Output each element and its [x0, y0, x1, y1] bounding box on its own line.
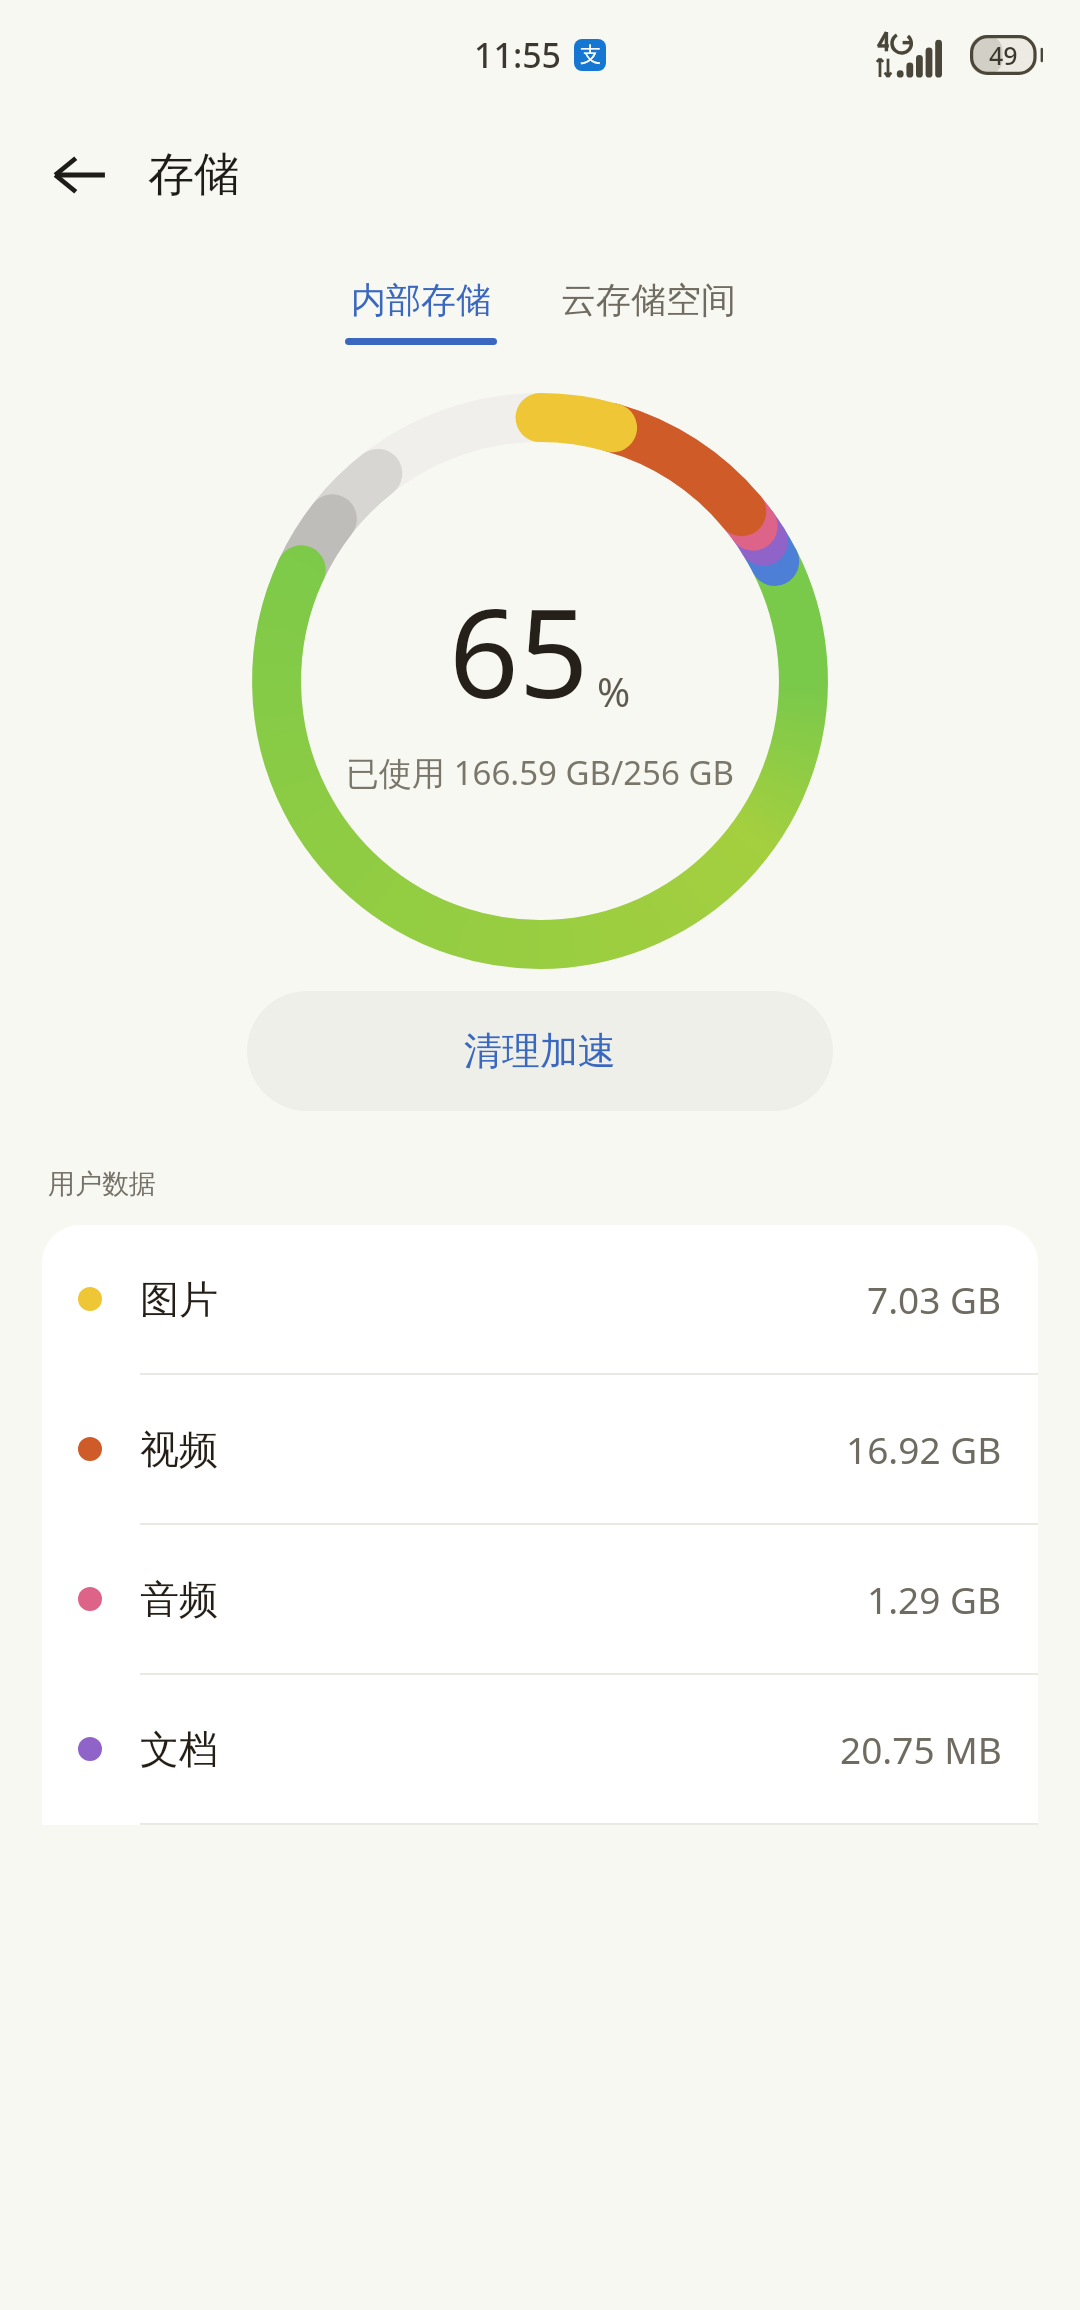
- staticText: 清理加速: [464, 1027, 616, 1075]
- button[interactable]: 云存储空间: [553, 278, 744, 322]
- staticText: 用户数据: [48, 1167, 156, 1201]
- staticText: 云存储空间: [561, 278, 736, 322]
- staticText: 20.75 MB: [840, 1724, 1002, 1774]
- button[interactable]: 内部存储: [337, 278, 505, 345]
- button[interactable]: 视频: [42, 1375, 1038, 1523]
- staticText: 65: [449, 568, 589, 734]
- button[interactable]: 文档: [42, 1675, 1038, 1823]
- button[interactable]: 返回: [36, 132, 122, 218]
- staticText: 存储: [148, 146, 240, 204]
- staticText: 支: [580, 42, 601, 68]
- staticText: 图片: [140, 1275, 218, 1324]
- staticText: 11:55: [474, 32, 562, 78]
- staticText: 文档: [140, 1725, 218, 1774]
- staticText: 7.03 GB: [867, 1274, 1002, 1324]
- staticText: 已使用 166.59 GB/256 GB: [346, 750, 734, 795]
- staticText: 视频: [140, 1425, 218, 1474]
- button[interactable]: 图片: [42, 1225, 1038, 1373]
- button[interactable]: 音频: [42, 1525, 1038, 1673]
- staticText: 1.29 GB: [867, 1574, 1002, 1624]
- staticText: 内部存储: [351, 278, 491, 322]
- staticText: 音频: [140, 1575, 218, 1624]
- button[interactable]: 清理加速: [247, 991, 833, 1111]
- staticText: %: [597, 664, 631, 718]
- staticText: 49: [989, 38, 1018, 72]
- staticText: 16.92 GB: [846, 1424, 1002, 1474]
